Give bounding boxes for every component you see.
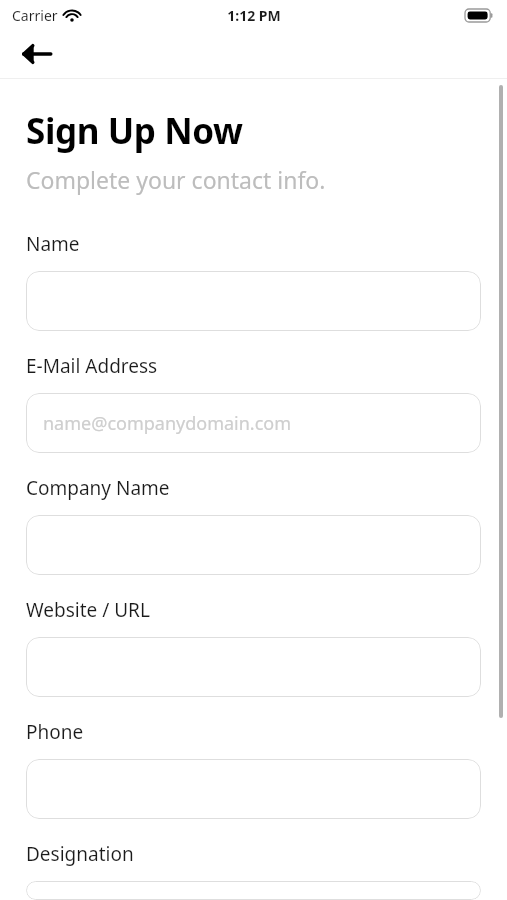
- button[interactable]: [26, 515, 481, 575]
- staticText: Complete your contact info.: [26, 164, 326, 195]
- staticText: Website / URL: [26, 597, 150, 623]
- button[interactable]: Back: [14, 31, 60, 77]
- button[interactable]: name@companydomain.com: [26, 393, 481, 453]
- staticText: Phone: [26, 719, 84, 745]
- staticText: name@companydomain.com: [43, 411, 292, 436]
- staticText: 1:12 PM: [227, 6, 281, 25]
- staticText: Carrier: [12, 6, 58, 25]
- staticText: Designation: [26, 841, 134, 867]
- staticText: Sign Up Now: [26, 107, 243, 155]
- staticText: Company Name: [26, 475, 170, 501]
- staticText: E-Mail Address: [26, 353, 158, 379]
- button[interactable]: [26, 759, 481, 819]
- button[interactable]: [26, 271, 481, 331]
- staticText: Name: [26, 231, 80, 257]
- button[interactable]: [26, 637, 481, 697]
- button[interactable]: [26, 881, 481, 900]
